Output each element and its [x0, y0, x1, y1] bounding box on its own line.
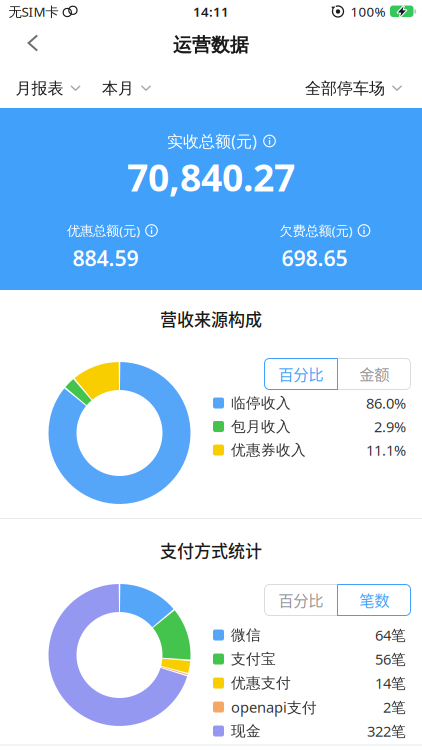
button[interactable]: 金额 [337, 358, 411, 390]
staticText: 实收总额(元) [167, 130, 257, 152]
staticText: 698.65 [281, 244, 347, 272]
button[interactable]: 百分比 [264, 358, 337, 390]
button[interactable]: 全部停车场 [305, 79, 402, 98]
button[interactable]: 实收总额说明 [263, 134, 276, 147]
staticText: 笔数 [359, 588, 389, 611]
staticText: 支付方式统计 [160, 538, 262, 562]
staticText: 临停收入 [231, 394, 291, 412]
staticText: 11.1% [366, 440, 406, 460]
staticText: 64笔 [375, 625, 406, 645]
staticText: 微信 [231, 626, 261, 644]
staticText: 70,840.27 [127, 152, 295, 202]
staticText: 运营数据 [173, 33, 249, 56]
staticText: 金额 [359, 362, 389, 385]
staticText: 14笔 [375, 673, 406, 693]
staticText: 56笔 [375, 649, 406, 669]
staticText: 百分比 [278, 362, 323, 385]
button[interactable]: 优惠总额说明 [145, 224, 158, 237]
staticText: 优惠总额(元) [67, 222, 140, 239]
button[interactable]: 本月 [102, 79, 151, 98]
staticText: 无SIM卡 [8, 3, 58, 20]
staticText: 现金 [231, 722, 261, 740]
staticText: 322笔 [367, 721, 406, 741]
staticText: 2.9% [374, 417, 406, 436]
button[interactable]: 百分比 [264, 584, 337, 616]
staticText: openapi支付 [231, 697, 317, 717]
staticText: 86.0% [366, 393, 406, 413]
staticText: 100% [350, 3, 385, 20]
button[interactable]: 月报表 [15, 79, 80, 98]
staticText: 欠费总额(元) [279, 222, 352, 239]
button[interactable]: Back [27, 34, 39, 52]
button[interactable]: 欠费总额说明 [357, 224, 370, 237]
staticText: 14:11 [193, 3, 229, 20]
staticText: 2笔 [383, 697, 406, 717]
staticText: 百分比 [278, 588, 323, 611]
staticText: 月报表 [15, 79, 63, 98]
staticText: 本月 [102, 79, 134, 98]
staticText: 包月收入 [231, 417, 291, 435]
staticText: 支付宝 [231, 650, 276, 668]
button[interactable]: 笔数 [337, 584, 411, 616]
staticText: 884.59 [72, 244, 138, 272]
staticText: 营收来源构成 [160, 306, 262, 331]
staticText: 优惠支付 [231, 674, 291, 692]
staticText: 全部停车场 [305, 79, 385, 98]
staticText: 优惠券收入 [231, 441, 306, 459]
